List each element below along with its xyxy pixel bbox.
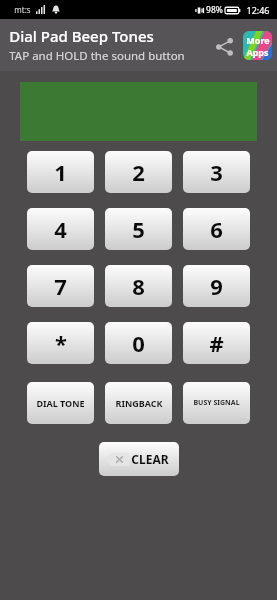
staticText: 6 [210,214,223,244]
button[interactable]: 1 [27,151,94,193]
staticText: CLEAR [131,451,169,467]
staticText: BUSY SIGNAL [193,398,240,408]
button[interactable]: CLEAR [99,442,179,476]
button[interactable]: 7 [27,265,94,307]
button[interactable]: DIAL TONE [27,382,94,424]
staticText: 9 [210,271,223,301]
staticText: 1 [54,157,67,187]
staticText: 8 [132,271,145,301]
button[interactable]: 2 [105,151,172,193]
staticText: # [209,328,224,358]
staticText: 4 [54,214,67,244]
button[interactable]: 5 [105,208,172,250]
staticText: Dial Pad Beep Tones [9,26,154,46]
button[interactable]: 6 [183,208,250,250]
staticText: 98% [206,4,223,16]
button[interactable]: 4 [27,208,94,250]
button[interactable]: BUSY SIGNAL [183,382,250,424]
button[interactable]: More Apps [241,29,274,62]
button[interactable]: 0 [105,322,172,364]
button[interactable]: 3 [183,151,250,193]
staticText: 5 [132,214,145,244]
staticText: More [246,34,270,46]
staticText: Apps [246,46,269,58]
staticText: 2 [132,157,145,187]
staticText: mt:s [14,4,31,15]
button[interactable]: Share [208,30,240,62]
staticText: RINGBACK [115,397,163,409]
staticText: DIAL TONE [36,397,85,409]
staticText: 0 [132,328,145,358]
button[interactable]: * [27,322,94,364]
button[interactable]: 8 [105,265,172,307]
button[interactable]: # [183,322,250,364]
staticText: 12:46 [246,4,270,16]
staticText: 7 [54,271,67,301]
staticText: * [55,328,67,358]
staticText: 3 [210,157,223,187]
button[interactable]: 9 [183,265,250,307]
button[interactable]: RINGBACK [105,382,172,424]
staticText: TAP and HOLD the sound button [9,48,185,64]
